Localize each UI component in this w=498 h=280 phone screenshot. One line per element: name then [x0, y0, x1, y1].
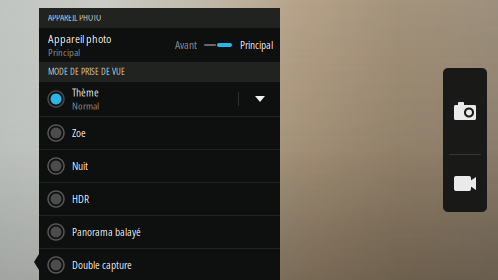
button[interactable]: Basculer entre appareil photo avant et p… — [175, 35, 273, 55]
staticText: Appareil photo — [48, 31, 111, 46]
staticText: Principal — [240, 38, 273, 52]
button[interactable]: Prendre une photo — [443, 68, 487, 154]
button[interactable]: Double capture — [39, 249, 280, 280]
staticText: HDR — [72, 192, 89, 206]
staticText: Panorama balayé — [72, 225, 141, 239]
button[interactable]: Zoe — [39, 117, 280, 149]
button[interactable]: Panorama balayé — [39, 216, 280, 248]
staticText: Zoe — [72, 126, 86, 140]
staticText: Normal — [72, 99, 99, 112]
staticText: Nuit — [72, 159, 88, 173]
button[interactable]: Nuit — [39, 150, 280, 182]
staticText: MODE DE PRISE DE VUE — [48, 66, 125, 77]
staticText: Double capture — [72, 258, 132, 272]
button[interactable]: Appareil photo — [39, 28, 280, 62]
staticText: Avant — [175, 38, 197, 52]
staticText: APPAREIL PHOTO — [48, 12, 101, 23]
button[interactable]: Thème — [39, 82, 280, 116]
staticText: Principal — [48, 46, 80, 59]
staticText: Thème — [72, 86, 99, 99]
button[interactable]: Enregistrer une vidéo — [443, 155, 487, 212]
button[interactable]: HDR — [39, 183, 280, 215]
